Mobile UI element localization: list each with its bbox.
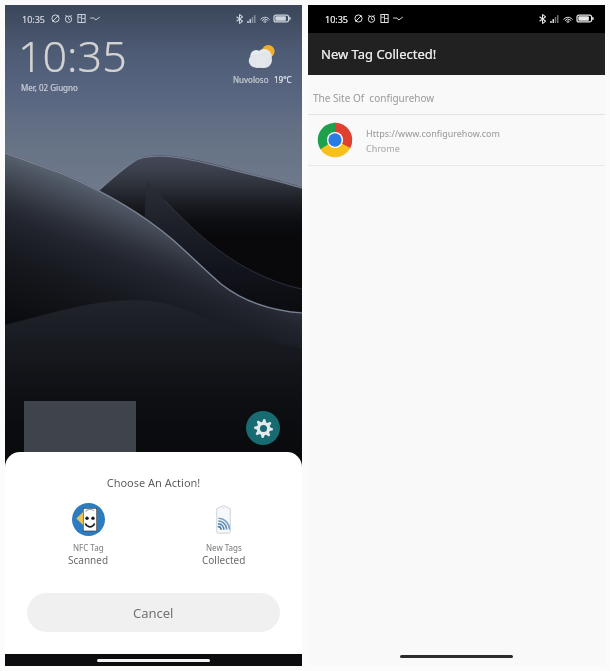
- staticText: 10:35: [325, 13, 349, 25]
- staticText: Collected: [202, 553, 246, 567]
- button[interactable]: New Tags: [187, 503, 260, 567]
- staticText: New Tags: [206, 542, 242, 553]
- staticText: 10:35: [22, 13, 46, 25]
- button[interactable]: Settings: [246, 411, 280, 445]
- button[interactable]: Cancel: [27, 593, 280, 632]
- staticText: 19°C: [274, 74, 292, 85]
- staticText: Mer, 02 Giugno: [21, 82, 78, 93]
- staticText: 10:35: [18, 26, 127, 85]
- staticText: Https://www.configurehow.com: [366, 127, 500, 139]
- staticText: Nuvoloso: [233, 74, 269, 85]
- staticText: Scanned: [68, 553, 109, 567]
- button[interactable]: Https://www.configurehow.com: [308, 115, 605, 165]
- staticText: The Site Of configurehow: [313, 91, 435, 105]
- staticText: NFC Tag: [73, 542, 104, 553]
- staticText: Chrome: [366, 142, 400, 154]
- staticText: Choose An Action!: [5, 475, 302, 490]
- button[interactable]: NFC Tag: [52, 503, 125, 567]
- staticText: New Tag Collected!: [321, 45, 437, 63]
- staticText: Cancel: [133, 604, 174, 622]
